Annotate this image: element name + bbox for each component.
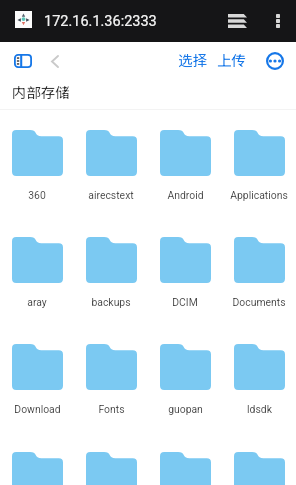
staticText: 172.16.1.36:2333 <box>44 13 157 30</box>
staticText: ldsdk <box>247 403 272 415</box>
button[interactable]: Fonts <box>74 344 148 415</box>
staticText: Android <box>167 189 204 201</box>
staticText: backups <box>91 296 131 308</box>
button[interactable]: Back <box>42 48 68 74</box>
button[interactable]: 选择 <box>171 46 213 72</box>
button[interactable]: 上传 <box>210 46 252 72</box>
staticText: Download <box>14 403 61 415</box>
button[interactable]: Documents <box>222 237 296 308</box>
staticText: 上传 <box>217 49 246 70</box>
button[interactable]: More options <box>265 8 291 34</box>
staticText: 内部存储 <box>12 81 70 102</box>
button[interactable]: Movies <box>0 452 74 485</box>
staticText: Documents <box>232 296 286 308</box>
button[interactable]: Music <box>74 452 148 485</box>
button[interactable]: airecstext <box>74 130 148 201</box>
button[interactable]: 360 <box>0 130 74 201</box>
staticText: Applications <box>230 189 288 201</box>
button[interactable]: Toggle sidebar <box>7 48 38 74</box>
button[interactable]: Pictures <box>222 452 296 485</box>
button[interactable]: More <box>262 48 287 74</box>
button[interactable]: aray <box>0 237 74 308</box>
staticText: airecstext <box>88 189 134 201</box>
staticText: 360 <box>28 189 46 201</box>
button[interactable]: Tabs <box>224 8 251 34</box>
staticText: 选择 <box>178 49 207 70</box>
staticText: DCIM <box>172 296 198 308</box>
button[interactable]: Notifications <box>148 452 222 485</box>
button[interactable]: ldsdk <box>222 344 296 415</box>
button[interactable]: guopan <box>148 344 222 415</box>
button[interactable]: Applications <box>222 130 296 201</box>
button[interactable]: Android <box>148 130 222 201</box>
button[interactable]: backups <box>74 237 148 308</box>
staticText: guopan <box>168 403 203 415</box>
staticText: aray <box>27 296 47 308</box>
button[interactable]: DCIM <box>148 237 222 308</box>
staticText: Fonts <box>98 403 125 415</box>
button[interactable]: Download <box>0 344 74 415</box>
